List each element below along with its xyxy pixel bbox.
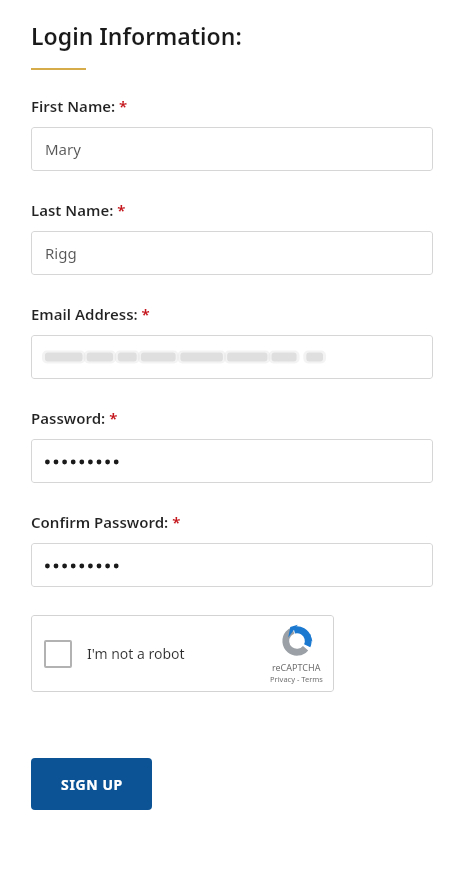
- staticText: Email Address: *: [31, 304, 150, 324]
- button[interactable]: I'm not a robot checkbox: [44, 640, 72, 668]
- staticText: Mary: [45, 139, 81, 159]
- staticText: Last Name: *: [31, 200, 126, 220]
- button[interactable]: [31, 543, 433, 587]
- button[interactable]: Rigg: [31, 231, 433, 275]
- staticText: Privacy - Terms: [270, 674, 323, 684]
- staticText: Login Information:: [31, 20, 242, 51]
- staticText: Confirm Password: *: [31, 512, 181, 532]
- staticText: SIGN UP: [61, 775, 123, 794]
- staticText: I'm not a robot: [87, 644, 185, 663]
- button[interactable]: [31, 335, 433, 379]
- button[interactable]: [31, 439, 433, 483]
- staticText: reCAPTCHA: [272, 661, 321, 673]
- button[interactable]: Mary: [31, 127, 433, 171]
- staticText: Password: *: [31, 408, 118, 428]
- button[interactable]: SIGN UP: [31, 758, 152, 810]
- staticText: Rigg: [45, 243, 77, 263]
- staticText: First Name: *: [31, 96, 128, 116]
- other: reCAPTCHA logo: [280, 624, 314, 658]
- button[interactable]: I'm not a robot checkbox: [31, 615, 334, 692]
